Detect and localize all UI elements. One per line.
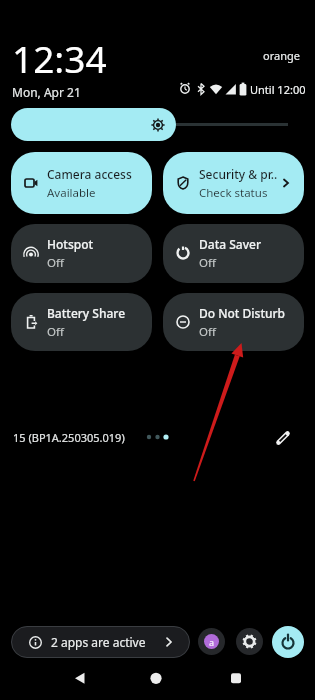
staticText: orange	[263, 48, 300, 63]
button[interactable]	[236, 628, 263, 655]
button[interactable]: Battery Share	[11, 293, 152, 351]
button[interactable]: Do Not Disturb	[163, 293, 304, 351]
staticText: Off	[199, 255, 216, 271]
staticText: Security & pr..	[199, 166, 278, 182]
button[interactable]	[11, 108, 176, 141]
staticText: Mon, Apr 21	[12, 84, 81, 100]
button[interactable]: Security & pr..	[163, 152, 304, 214]
staticText: Camera access	[47, 166, 132, 182]
button[interactable]: Camera access	[11, 152, 152, 214]
staticText: Available	[47, 185, 96, 201]
staticText: Do Not Disturb	[199, 305, 286, 321]
button[interactable]	[272, 626, 304, 658]
staticText: Off	[199, 324, 216, 340]
button[interactable]: a	[198, 628, 225, 655]
staticText: 15 (BP1A.250305.019)	[13, 430, 125, 445]
staticText: Check status	[199, 185, 268, 201]
staticText: Until 12:00	[250, 82, 306, 97]
button[interactable]	[269, 423, 297, 451]
button[interactable]: Hotspot	[11, 224, 152, 283]
staticText: Off	[47, 324, 64, 340]
staticText: Hotspot	[47, 236, 94, 252]
staticText: a	[209, 636, 215, 648]
staticText: Data Saver	[199, 236, 261, 252]
staticText: 12:34	[12, 33, 107, 83]
staticText: 2 apps are active	[51, 634, 146, 650]
button[interactable]: 2 apps are active	[11, 626, 190, 658]
staticText: Battery Share	[47, 305, 126, 321]
staticText: Off	[47, 255, 64, 271]
button[interactable]: Data Saver	[163, 224, 304, 283]
